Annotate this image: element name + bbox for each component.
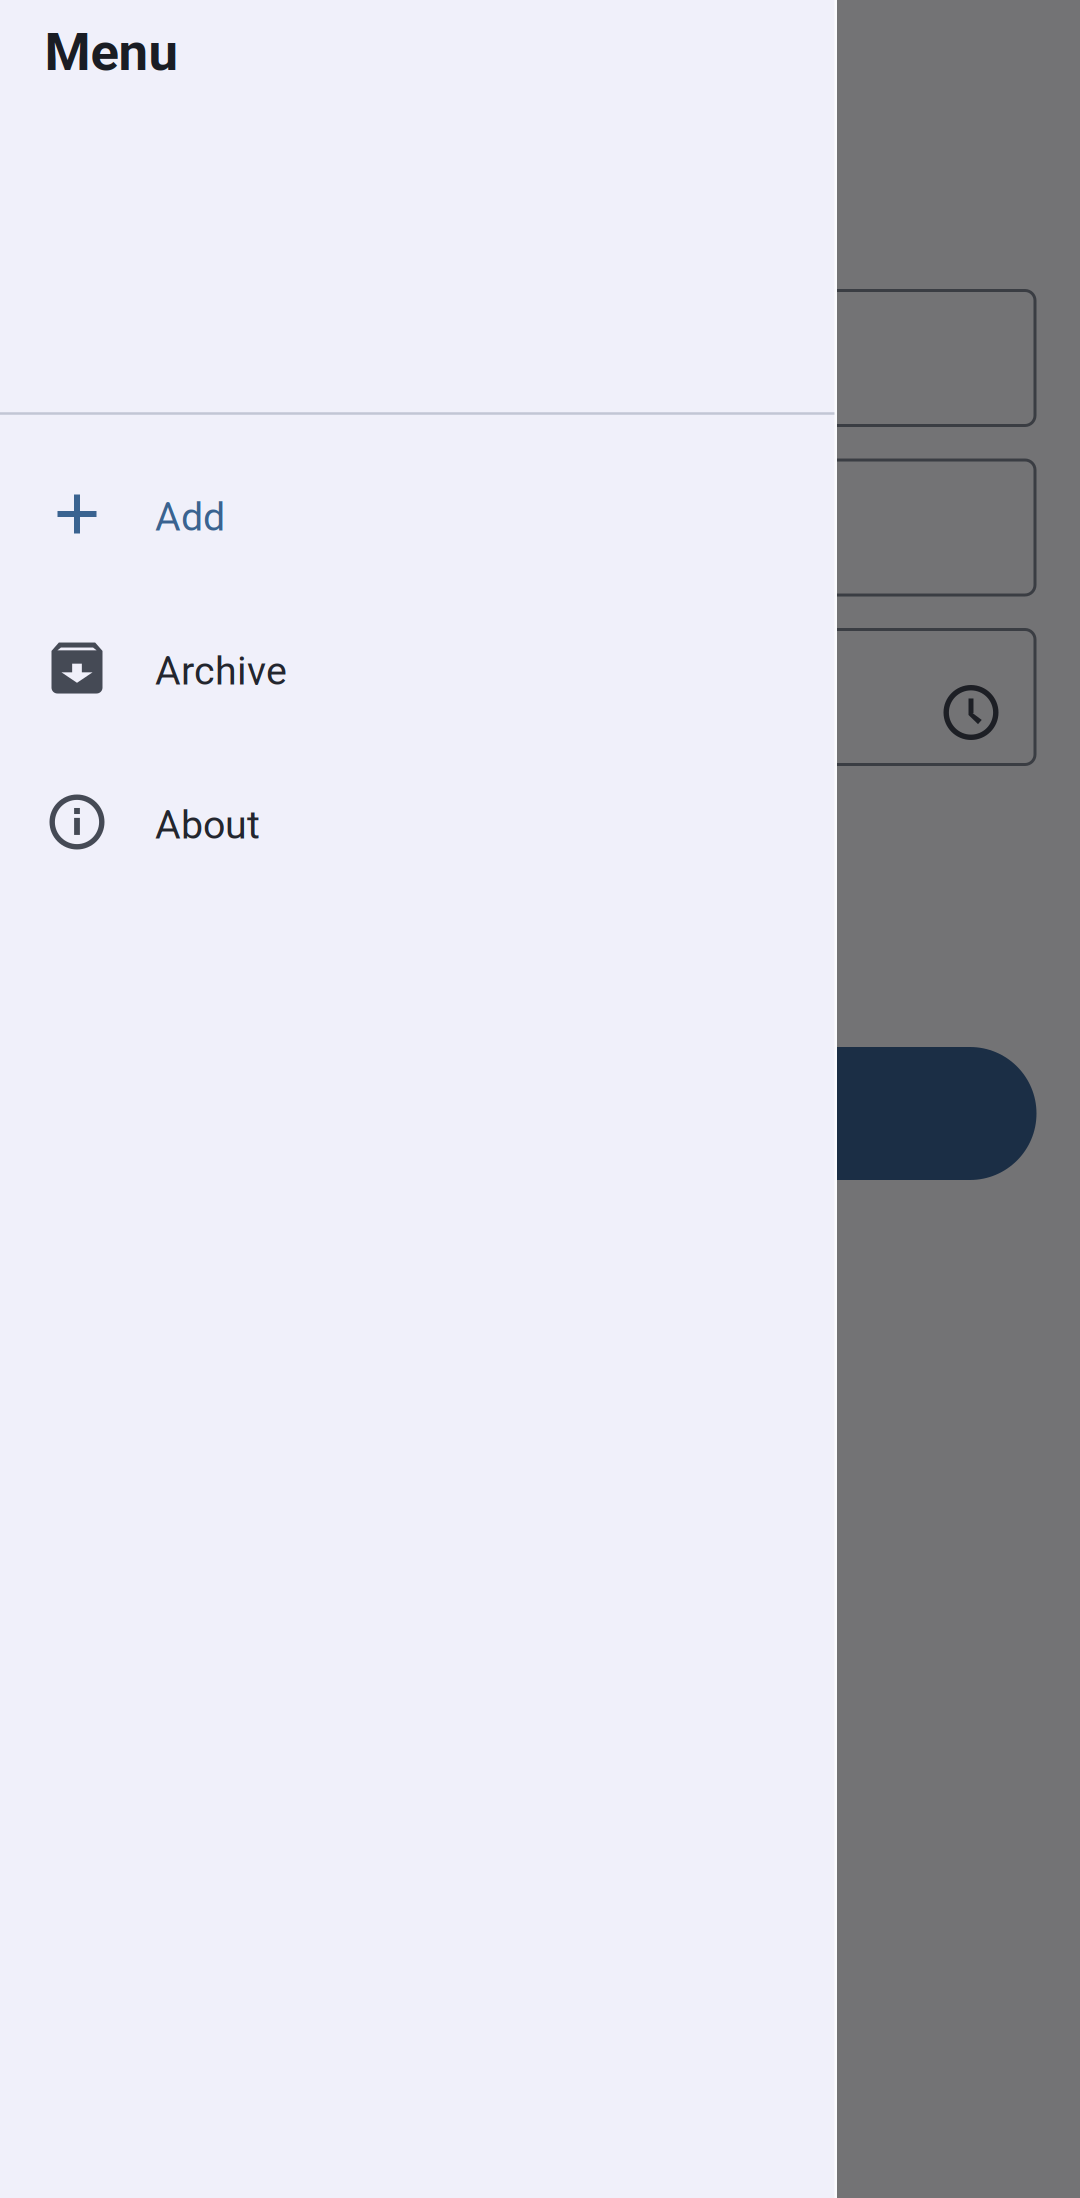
button[interactable]: About	[0, 745, 835, 899]
staticText: About	[155, 802, 260, 848]
button[interactable]: Task	[416, 458, 1036, 596]
button[interactable]: Archive	[0, 591, 835, 745]
button[interactable]: Task	[416, 289, 1036, 427]
staticText: Menu	[44, 21, 177, 83]
staticText: Add	[155, 494, 225, 540]
button[interactable]: Add	[0, 437, 835, 591]
staticText: Archive	[155, 648, 287, 694]
button[interactable]: Task with reminder	[416, 628, 1036, 766]
button[interactable]: New task	[616, 1047, 1036, 1180]
